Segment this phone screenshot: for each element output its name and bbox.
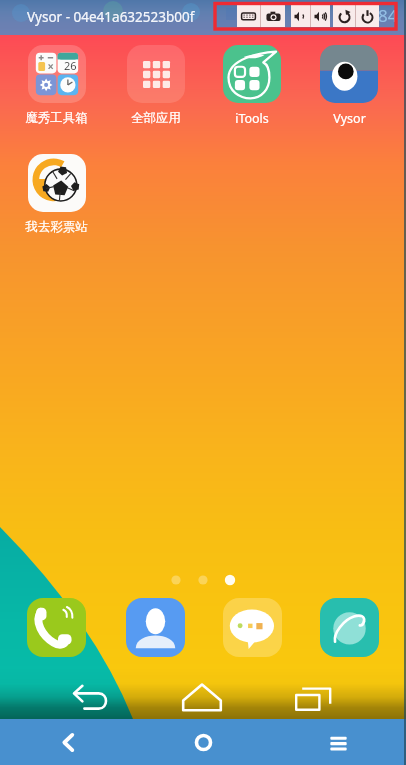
button[interactable]: Home: [176, 667, 228, 719]
button[interactable]: 全部应用: [107, 45, 205, 137]
button[interactable]: Messages: [223, 598, 282, 657]
button[interactable]: Keyboard: [237, 5, 260, 27]
button[interactable]: Volume down: [291, 5, 310, 27]
button[interactable]: Home: [180, 719, 226, 765]
button[interactable]: Screenshot: [261, 5, 285, 27]
button[interactable]: Volume up: [311, 5, 330, 27]
button[interactable]: Power: [356, 5, 379, 27]
staticText: 魔秀工具箱: [25, 110, 88, 126]
button[interactable]: Browser: [320, 598, 379, 657]
button[interactable]: iTools: [203, 45, 301, 137]
staticText: 我去彩票站: [25, 219, 88, 235]
button[interactable]: Contacts: [126, 598, 185, 657]
button[interactable]: Back: [64, 667, 116, 719]
staticText: iTools: [235, 110, 269, 127]
button[interactable]: Rotate: [333, 5, 355, 27]
button[interactable]: Recents: [289, 667, 341, 719]
staticText: 84: [378, 4, 398, 27]
button[interactable]: Menu: [315, 719, 361, 765]
staticText: Vysor - 04e41a632523b00f: [27, 8, 195, 26]
button[interactable]: 我去彩票站: [7, 154, 105, 246]
staticText: 26: [64, 58, 77, 73]
button[interactable]: 26: [7, 45, 105, 137]
button[interactable]: Vysor: [300, 45, 398, 137]
button[interactable]: Back: [45, 719, 91, 765]
staticText: Vysor: [333, 110, 366, 127]
button[interactable]: Phone: [27, 598, 86, 657]
staticText: 全部应用: [131, 110, 181, 126]
